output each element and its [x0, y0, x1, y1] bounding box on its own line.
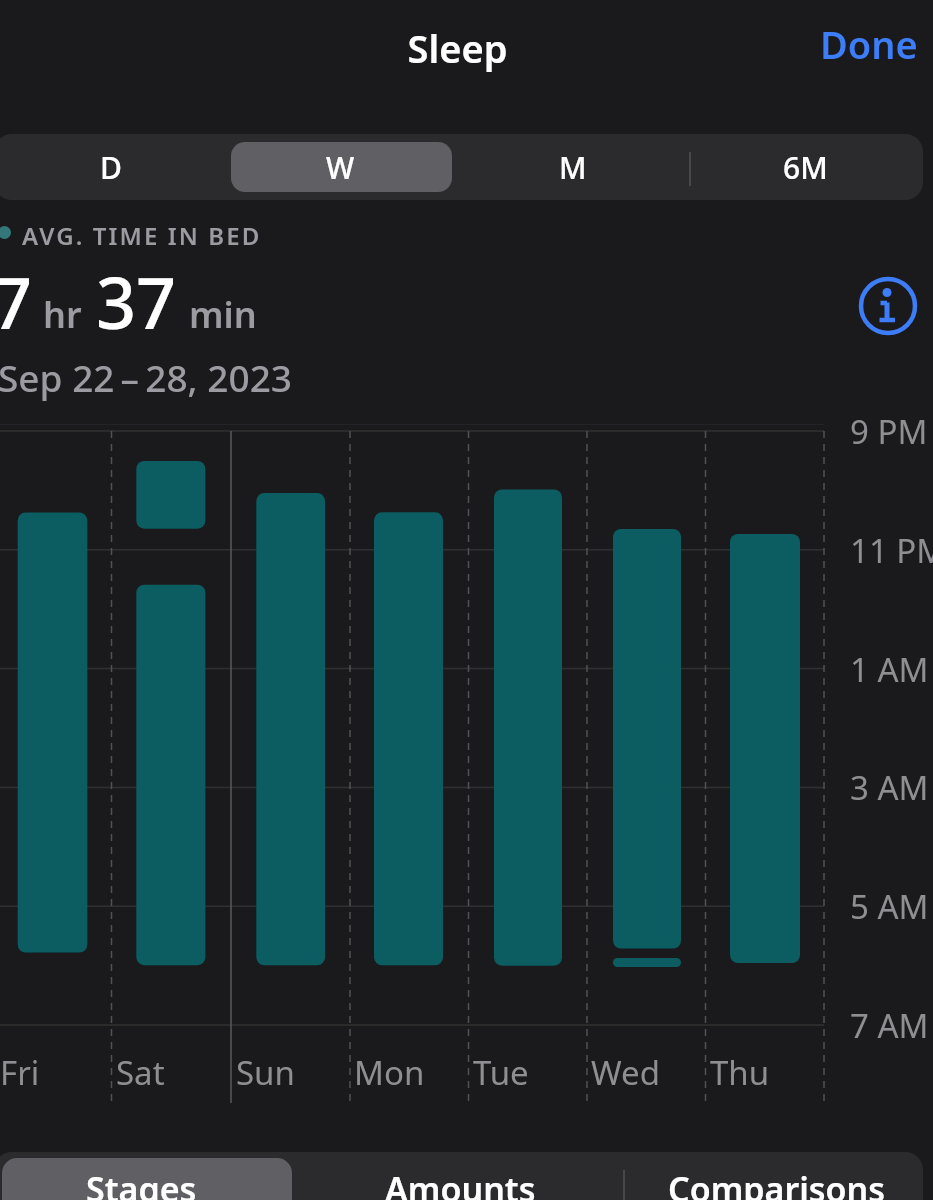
- staticText: Sep 22 – 28, 2023: [0, 352, 292, 402]
- button[interactable]: Stages: [56, 1158, 226, 1200]
- staticText: Sun: [236, 1050, 295, 1095]
- staticText: Fri: [0, 1050, 40, 1095]
- staticText: D: [100, 147, 122, 188]
- staticText: 7: [0, 254, 33, 349]
- button[interactable]: D: [54, 134, 167, 200]
- staticText: 7 AM: [850, 1003, 929, 1047]
- staticText: hr: [43, 290, 82, 339]
- staticText: Mon: [354, 1050, 425, 1095]
- staticText: Sat: [116, 1050, 165, 1095]
- staticText: AVG. TIME IN BED: [22, 219, 262, 252]
- staticText: 5 AM: [850, 884, 929, 928]
- staticText: Thu: [710, 1050, 770, 1095]
- button[interactable]: 6M: [749, 134, 862, 200]
- button[interactable]: [856, 274, 920, 338]
- staticText: Sleep: [0, 22, 924, 74]
- staticText: 37: [96, 254, 177, 349]
- button[interactable]: Done: [810, 18, 928, 70]
- staticText: Tue: [473, 1050, 529, 1095]
- staticText: 6M: [783, 147, 828, 188]
- button[interactable]: Amounts: [375, 1158, 545, 1200]
- staticText: 1 AM: [850, 647, 929, 691]
- button[interactable]: W: [284, 134, 397, 200]
- staticText: W: [326, 147, 355, 188]
- staticText: Amounts: [385, 1166, 536, 1200]
- staticText: 11 PM: [850, 528, 933, 572]
- button[interactable]: Comparisons: [654, 1158, 900, 1200]
- staticText: Stages: [86, 1166, 197, 1200]
- staticText: M: [559, 147, 587, 188]
- staticText: min: [189, 290, 257, 339]
- staticText: 9 PM: [850, 409, 928, 453]
- staticText: Wed: [591, 1050, 660, 1095]
- button[interactable]: M: [516, 134, 629, 200]
- staticText: Done: [820, 18, 918, 70]
- staticText: 3 AM: [850, 765, 929, 809]
- staticText: Comparisons: [668, 1166, 886, 1200]
